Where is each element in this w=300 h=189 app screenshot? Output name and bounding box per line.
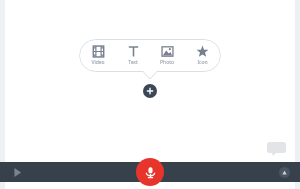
button[interactable]: Record voice [136, 158, 164, 186]
button[interactable]: Messages [267, 142, 286, 156]
button[interactable]: Play [8, 163, 26, 181]
staticText: Icon [197, 59, 208, 66]
staticText: Video [91, 59, 105, 66]
button[interactable]: Add block [143, 84, 157, 98]
button[interactable]: Icon [187, 45, 217, 66]
button[interactable]: Account [276, 164, 292, 180]
staticText: Photo [160, 59, 174, 66]
staticText: Text [128, 59, 138, 66]
button[interactable]: Text [118, 45, 148, 66]
button[interactable]: Video [83, 45, 113, 66]
button[interactable]: Photo [152, 45, 182, 66]
